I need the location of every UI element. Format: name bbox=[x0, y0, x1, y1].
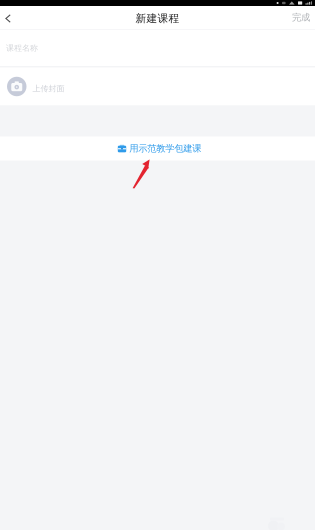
staticText: 上传封面 bbox=[32, 84, 64, 93]
button[interactable]: 上传封面 bbox=[0, 67, 315, 105]
staticText: 新建课程 bbox=[135, 12, 179, 25]
button[interactable]: 用示范教学包建课 bbox=[0, 136, 315, 160]
staticText: 完成 bbox=[292, 12, 310, 23]
staticText: 课程名称 bbox=[6, 43, 38, 53]
button[interactable]: Back bbox=[0, 6, 16, 29]
button[interactable]: 完成 bbox=[292, 6, 315, 29]
staticText: 用示范教学包建课 bbox=[129, 143, 201, 154]
